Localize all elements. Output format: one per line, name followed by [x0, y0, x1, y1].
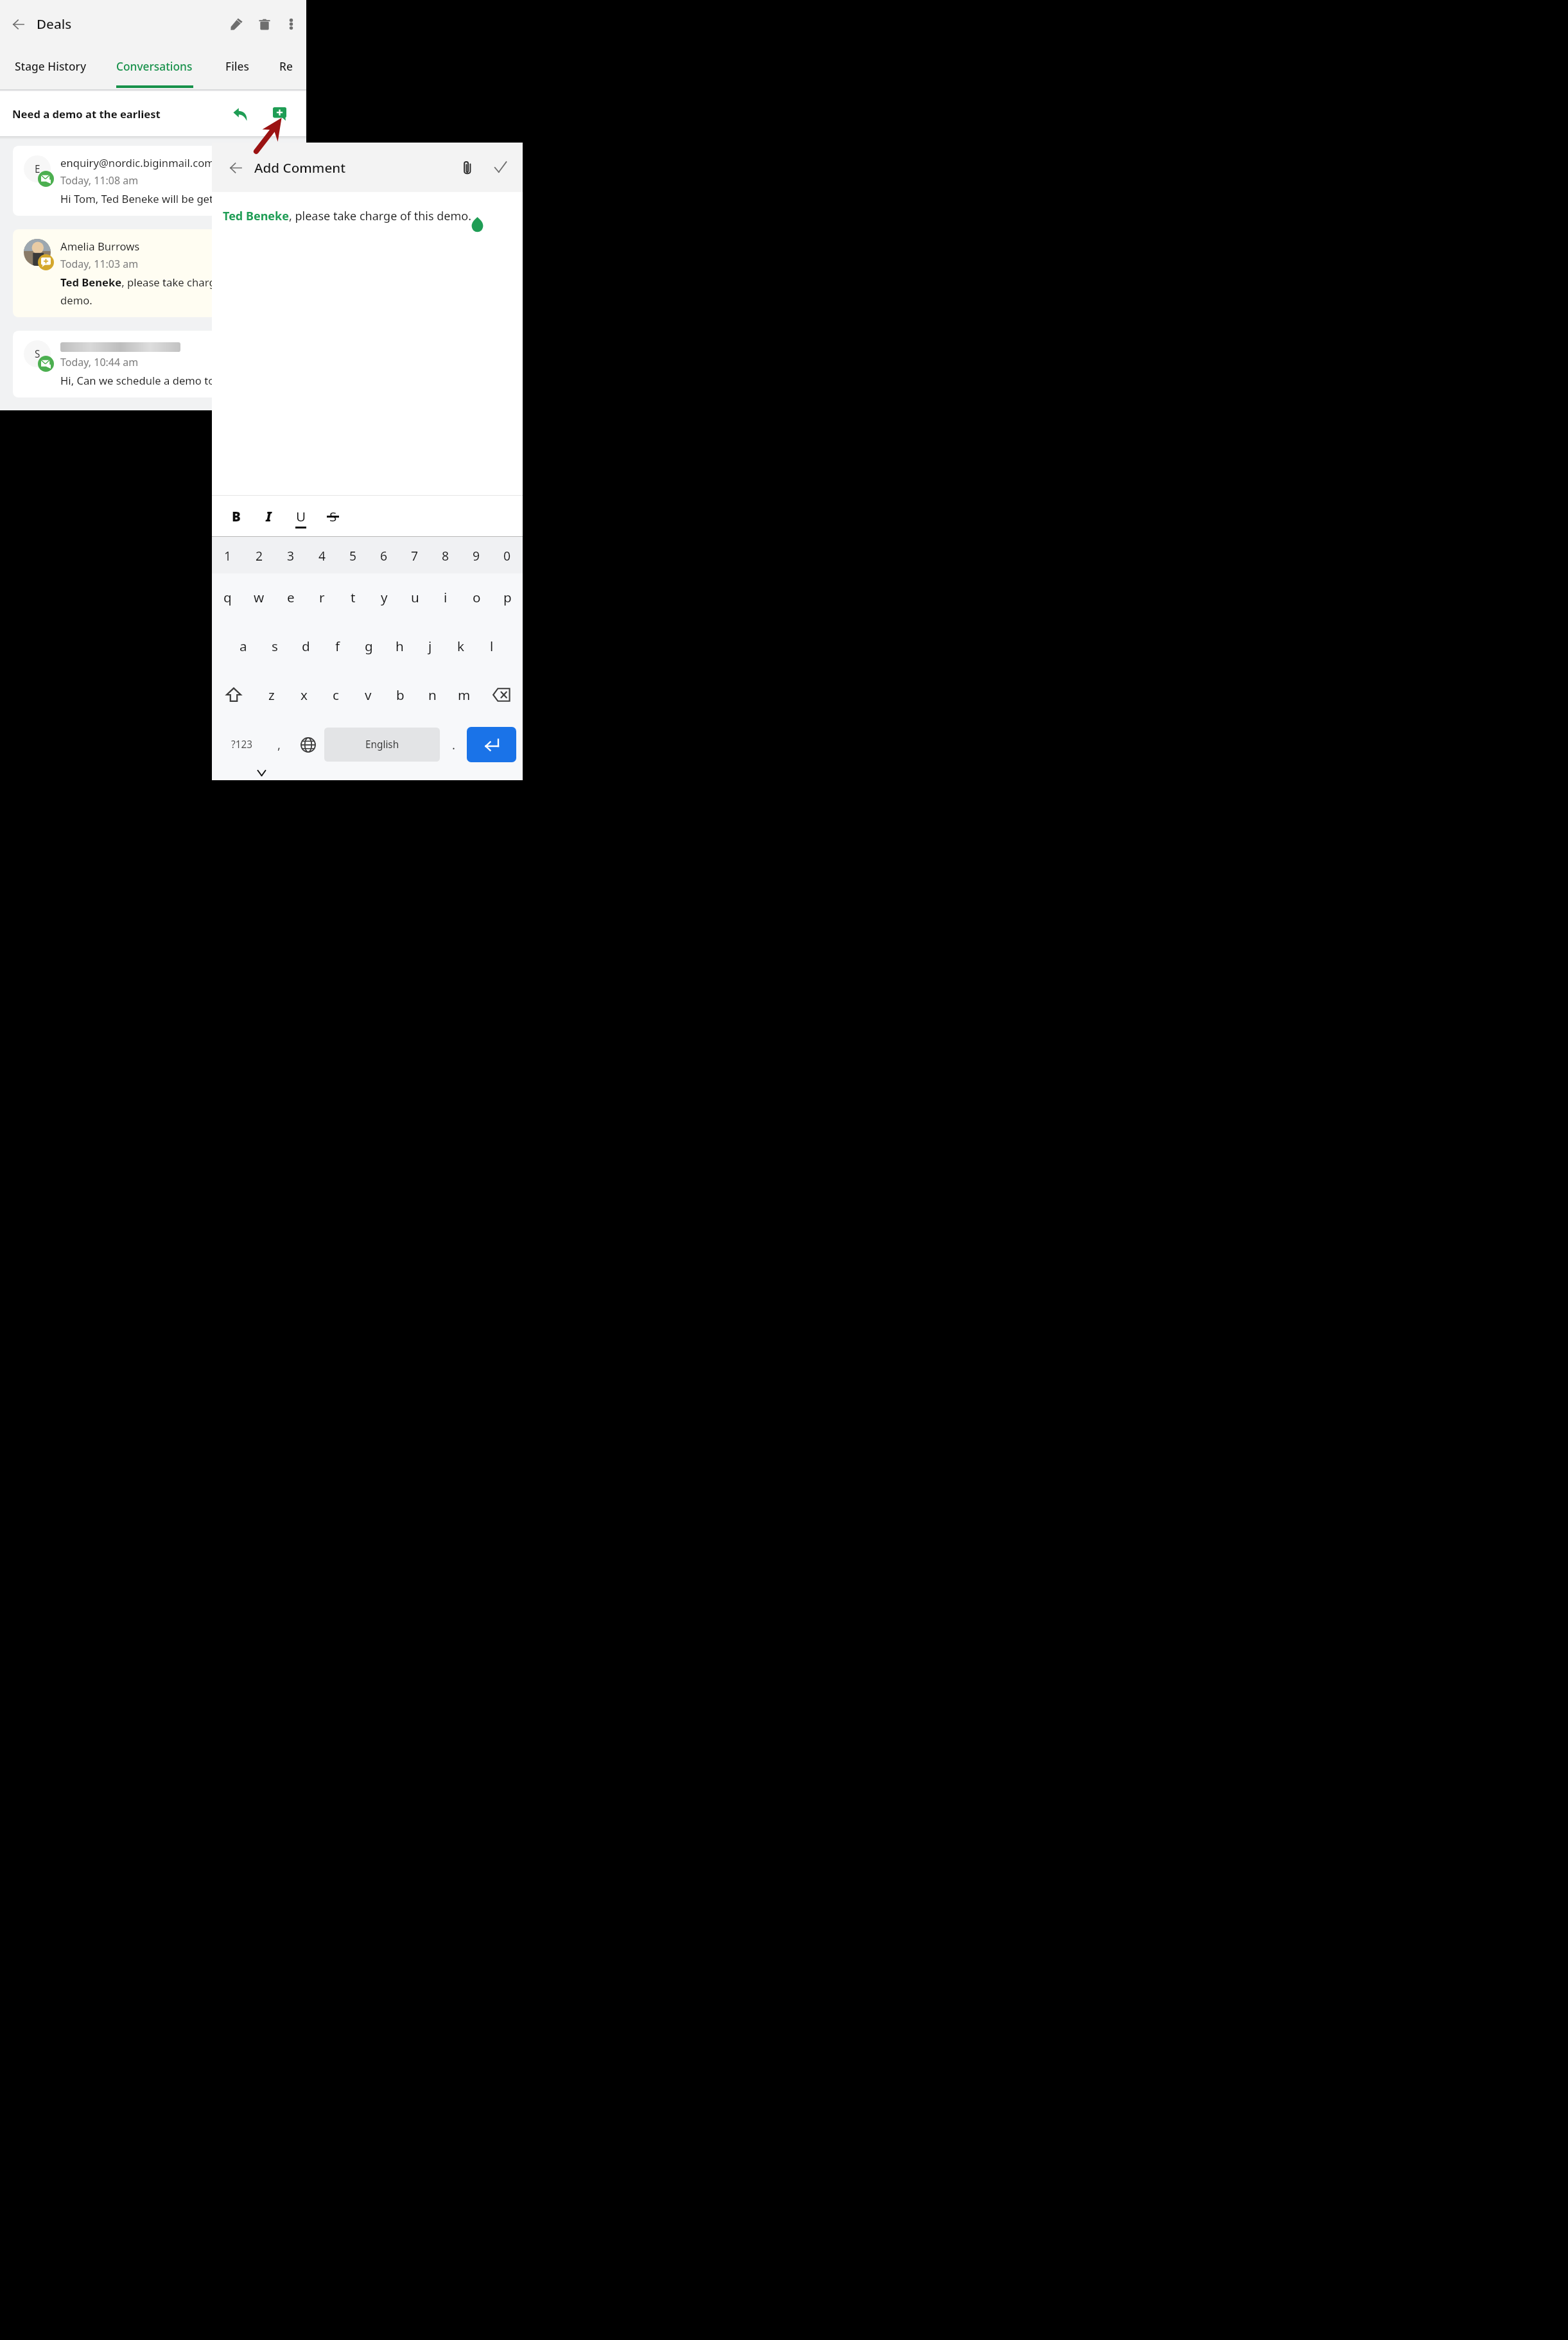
button[interactable]: .: [440, 724, 467, 765]
staticText: e: [287, 588, 295, 606]
staticText: i: [444, 588, 448, 606]
staticText: Files: [225, 58, 249, 74]
button[interactable]: z: [255, 676, 288, 713]
button[interactable]: S: [13, 331, 293, 397]
button[interactable]: m: [448, 676, 480, 713]
button[interactable]: 5: [338, 537, 369, 573]
staticText: k: [457, 637, 465, 655]
button[interactable]: Attach file: [453, 153, 481, 181]
button[interactable]: 4: [306, 537, 338, 573]
staticText: n: [428, 686, 437, 704]
button[interactable]: Reply: [226, 100, 254, 128]
button[interactable]: j: [415, 627, 446, 665]
button[interactable]: English: [324, 728, 440, 762]
button[interactable]: Backspace: [480, 676, 523, 713]
staticText: Amelia Burrows: [60, 239, 140, 254]
button[interactable]: Add comment: [266, 101, 292, 127]
button[interactable]: d: [290, 627, 322, 665]
staticText: c: [333, 686, 339, 704]
button[interactable]: v: [352, 676, 384, 713]
staticText: Today, 11:03 am: [60, 257, 139, 271]
button[interactable]: Shift: [212, 676, 255, 713]
staticText: u: [411, 588, 419, 606]
staticText: Hi Tom, Ted Beneke will be gett: [60, 191, 218, 206]
button[interactable]: u: [399, 578, 430, 616]
button[interactable]: y: [369, 578, 399, 616]
button[interactable]: 8: [430, 537, 461, 573]
button[interactable]: k: [446, 627, 476, 665]
button[interactable]: More options: [278, 11, 304, 37]
button[interactable]: S: [317, 500, 349, 532]
staticText: 0: [503, 547, 511, 564]
button[interactable]: Enter: [467, 727, 516, 762]
staticText: Hi, Can we schedule a demo to: [60, 373, 215, 388]
button[interactable]: E: [13, 146, 293, 216]
button[interactable]: t: [338, 578, 369, 616]
staticText: 9: [473, 547, 480, 564]
staticText: l: [490, 637, 494, 655]
staticText: 5: [349, 547, 357, 564]
button[interactable]: 6: [369, 537, 399, 573]
button[interactable]: ,: [265, 724, 292, 765]
button[interactable]: Re: [266, 48, 306, 89]
staticText: a: [240, 637, 247, 655]
staticText: 8: [442, 547, 449, 564]
button[interactable]: i: [430, 578, 461, 616]
button[interactable]: Edit: [223, 10, 250, 38]
button[interactable]: 7: [399, 537, 430, 573]
button[interactable]: n: [416, 676, 448, 713]
button[interactable]: q: [212, 578, 243, 616]
staticText: enquiry@nordic.biginmail.com: [60, 155, 214, 170]
staticText: .: [452, 737, 455, 753]
button[interactable]: 9: [461, 537, 492, 573]
staticText: U: [296, 507, 306, 525]
button[interactable]: Amelia Burrows: [13, 229, 293, 317]
button[interactable]: U: [284, 500, 317, 532]
button[interactable]: B: [220, 500, 252, 532]
button[interactable]: p: [492, 578, 523, 616]
button[interactable]: 2: [243, 537, 275, 573]
staticText: o: [473, 588, 481, 606]
staticText: English: [365, 738, 399, 751]
staticText: g: [365, 637, 373, 655]
button[interactable]: x: [288, 676, 320, 713]
button[interactable]: Stage History: [0, 48, 101, 89]
button[interactable]: 1: [212, 537, 243, 573]
staticText: B: [232, 507, 241, 525]
button[interactable]: h: [384, 627, 415, 665]
button[interactable]: s: [259, 627, 290, 665]
staticText: Add Comment: [254, 159, 346, 177]
staticText: ?123: [231, 738, 252, 751]
button[interactable]: b: [384, 676, 416, 713]
button[interactable]: ?123: [218, 724, 265, 765]
staticText: x: [301, 686, 308, 704]
button[interactable]: Conversations: [101, 48, 208, 89]
staticText: 3: [287, 547, 295, 564]
staticText: Ted Beneke, please take charge of this d…: [223, 208, 472, 224]
button[interactable]: o: [461, 578, 492, 616]
button[interactable]: Back: [223, 155, 248, 180]
button[interactable]: g: [353, 627, 384, 665]
button[interactable]: Change language: [292, 724, 324, 765]
staticText: y: [381, 588, 388, 606]
staticText: Stage History: [15, 58, 87, 74]
button[interactable]: f: [322, 627, 353, 665]
button[interactable]: l: [476, 627, 507, 665]
button[interactable]: a: [227, 627, 259, 665]
button[interactable]: c: [320, 676, 352, 713]
button[interactable]: Files: [208, 48, 266, 89]
staticText: j: [428, 637, 432, 655]
staticText: Today, 10:44 am: [60, 355, 139, 369]
button[interactable]: Hide keyboard: [248, 765, 274, 780]
button[interactable]: Back: [6, 12, 30, 36]
button[interactable]: e: [275, 578, 306, 616]
button[interactable]: Ted Beneke, please take charge of this d…: [212, 192, 523, 495]
button[interactable]: Done: [487, 153, 514, 181]
button[interactable]: Delete: [250, 10, 278, 38]
button[interactable]: 0: [492, 537, 523, 573]
button[interactable]: I: [252, 500, 284, 532]
staticText: z: [268, 686, 275, 704]
button[interactable]: w: [243, 578, 275, 616]
button[interactable]: r: [306, 578, 338, 616]
button[interactable]: 3: [275, 537, 306, 573]
